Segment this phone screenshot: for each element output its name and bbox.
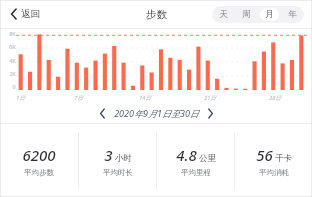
- staticText: 2K: [9, 70, 16, 77]
- button[interactable]: 周: [237, 8, 256, 21]
- staticText: 1日: [16, 94, 25, 102]
- staticText: 平均消耗: [259, 168, 289, 177]
- staticText: 公里: [199, 153, 216, 164]
- staticText: 56: [256, 145, 273, 165]
- staticText: 3: [104, 145, 113, 165]
- staticText: 步数: [146, 8, 167, 21]
- staticText: 7日: [74, 94, 83, 102]
- button[interactable]: 月: [260, 8, 279, 21]
- staticText: 0: [12, 83, 16, 90]
- staticText: 平均时长: [103, 168, 133, 177]
- staticText: 千卡: [275, 153, 292, 164]
- button[interactable]: 年: [283, 8, 302, 21]
- staticText: 返回: [21, 8, 40, 20]
- staticText: 周: [242, 9, 251, 20]
- staticText: 月: [265, 9, 274, 20]
- staticText: 2020年9月1日至30日: [114, 107, 199, 119]
- staticText: 年: [288, 9, 297, 20]
- button[interactable]: [0, 29, 312, 103]
- button[interactable]: 56: [235, 124, 312, 197]
- button[interactable]: 6200: [0, 124, 78, 197]
- staticText: 14日: [139, 94, 151, 102]
- staticText: 21日: [204, 94, 216, 102]
- button[interactable]: Previous period: [95, 106, 110, 121]
- staticText: 平均步数: [24, 168, 54, 177]
- button[interactable]: 3: [79, 124, 156, 197]
- staticText: 平均里程: [181, 168, 211, 177]
- button[interactable]: 4.8: [157, 124, 234, 197]
- staticText: 4K: [9, 57, 16, 64]
- button[interactable]: Next period: [203, 106, 218, 121]
- staticText: 天: [219, 9, 228, 20]
- staticText: 8K: [9, 30, 16, 37]
- staticText: 小时: [115, 153, 132, 164]
- staticText: 28日: [269, 94, 281, 102]
- staticText: 6K: [9, 43, 16, 50]
- button[interactable]: 返回: [9, 4, 42, 24]
- staticText: 4.8: [176, 145, 197, 165]
- button[interactable]: 天: [214, 8, 233, 21]
- staticText: 6200: [22, 145, 56, 165]
